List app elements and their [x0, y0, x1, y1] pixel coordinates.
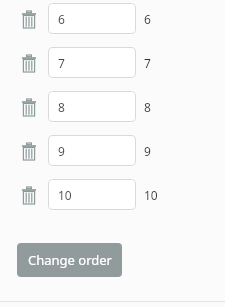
staticText: 9 — [144, 143, 151, 159]
button[interactable]: 10 — [48, 179, 136, 210]
staticText: 8 — [58, 99, 65, 115]
button[interactable]: 6 — [48, 3, 136, 34]
button[interactable]: Delete item 6 — [20, 7, 38, 31]
button[interactable]: Delete item 8 — [20, 95, 38, 119]
staticText: 10 — [144, 187, 158, 203]
button[interactable]: Delete item 9 — [20, 139, 38, 163]
staticText: 6 — [144, 11, 151, 27]
button[interactable]: Delete item 10 — [20, 183, 38, 207]
staticText: 9 — [58, 143, 65, 159]
staticText: 7 — [144, 55, 151, 71]
button[interactable]: 7 — [48, 47, 136, 78]
staticText: 10 — [58, 187, 72, 203]
staticText: 6 — [58, 11, 65, 27]
staticText: 7 — [58, 55, 65, 71]
button[interactable]: Delete item 7 — [20, 51, 38, 75]
button[interactable]: 8 — [48, 91, 136, 122]
staticText: 8 — [144, 99, 151, 115]
button[interactable]: Change order — [17, 243, 122, 277]
button[interactable]: 9 — [48, 135, 136, 166]
staticText: Change order — [28, 251, 112, 269]
